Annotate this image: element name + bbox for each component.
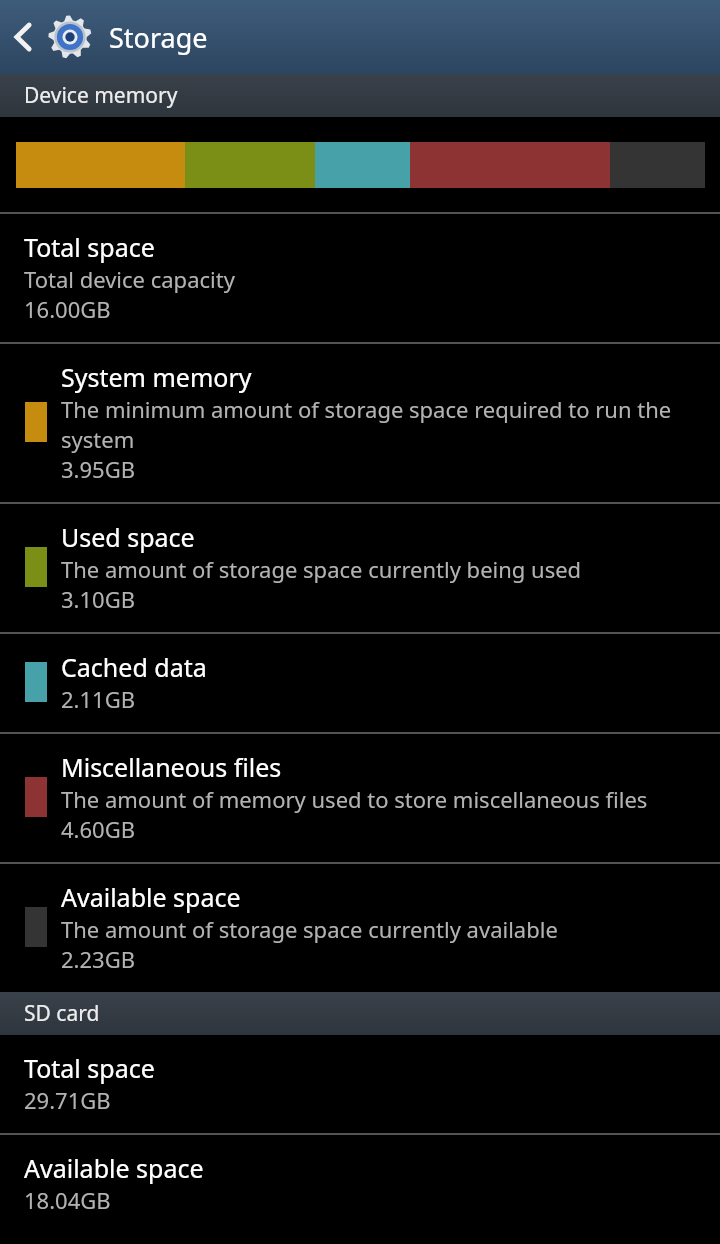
staticText: 2.23GB: [61, 944, 135, 974]
button[interactable]: Available space: [0, 864, 720, 992]
staticText: 3.95GB: [61, 454, 135, 484]
staticText: Used space: [61, 520, 195, 554]
staticText: 2.11GB: [61, 684, 135, 714]
button[interactable]: Cached data: [0, 634, 720, 732]
staticText: Total space: [24, 230, 155, 264]
button[interactable]: System memory: [0, 344, 720, 502]
staticText: 16.00GB: [24, 294, 111, 324]
staticText: 29.71GB: [24, 1085, 111, 1115]
staticText: System memory: [61, 360, 252, 394]
staticText: Device memory: [24, 81, 178, 110]
staticText: SD card: [24, 999, 100, 1028]
staticText: 18.04GB: [24, 1185, 111, 1215]
staticText: 3.10GB: [61, 584, 135, 614]
staticText: Total space: [24, 1051, 155, 1085]
button[interactable]: Total space: [0, 1035, 720, 1133]
button[interactable]: Used space: [0, 504, 720, 632]
staticText: The minimum amount of storage space requ…: [61, 394, 704, 454]
button[interactable]: Total space: [0, 214, 720, 342]
staticText: 4.60GB: [61, 814, 135, 844]
staticText: The amount of storage space currently av…: [61, 914, 558, 944]
staticText: Available space: [61, 880, 241, 914]
button[interactable]: Available space: [0, 1135, 720, 1233]
staticText: Cached data: [61, 650, 207, 684]
button[interactable]: Navigate up, Storage: [0, 0, 720, 74]
button[interactable]: Miscellaneous files: [0, 734, 720, 862]
staticText: Total device capacity: [24, 264, 235, 294]
staticText: The amount of memory used to store misce…: [61, 784, 648, 814]
staticText: Storage: [109, 19, 208, 56]
staticText: Miscellaneous files: [61, 750, 282, 784]
staticText: The amount of storage space currently be…: [61, 554, 582, 584]
staticText: Available space: [24, 1151, 204, 1185]
